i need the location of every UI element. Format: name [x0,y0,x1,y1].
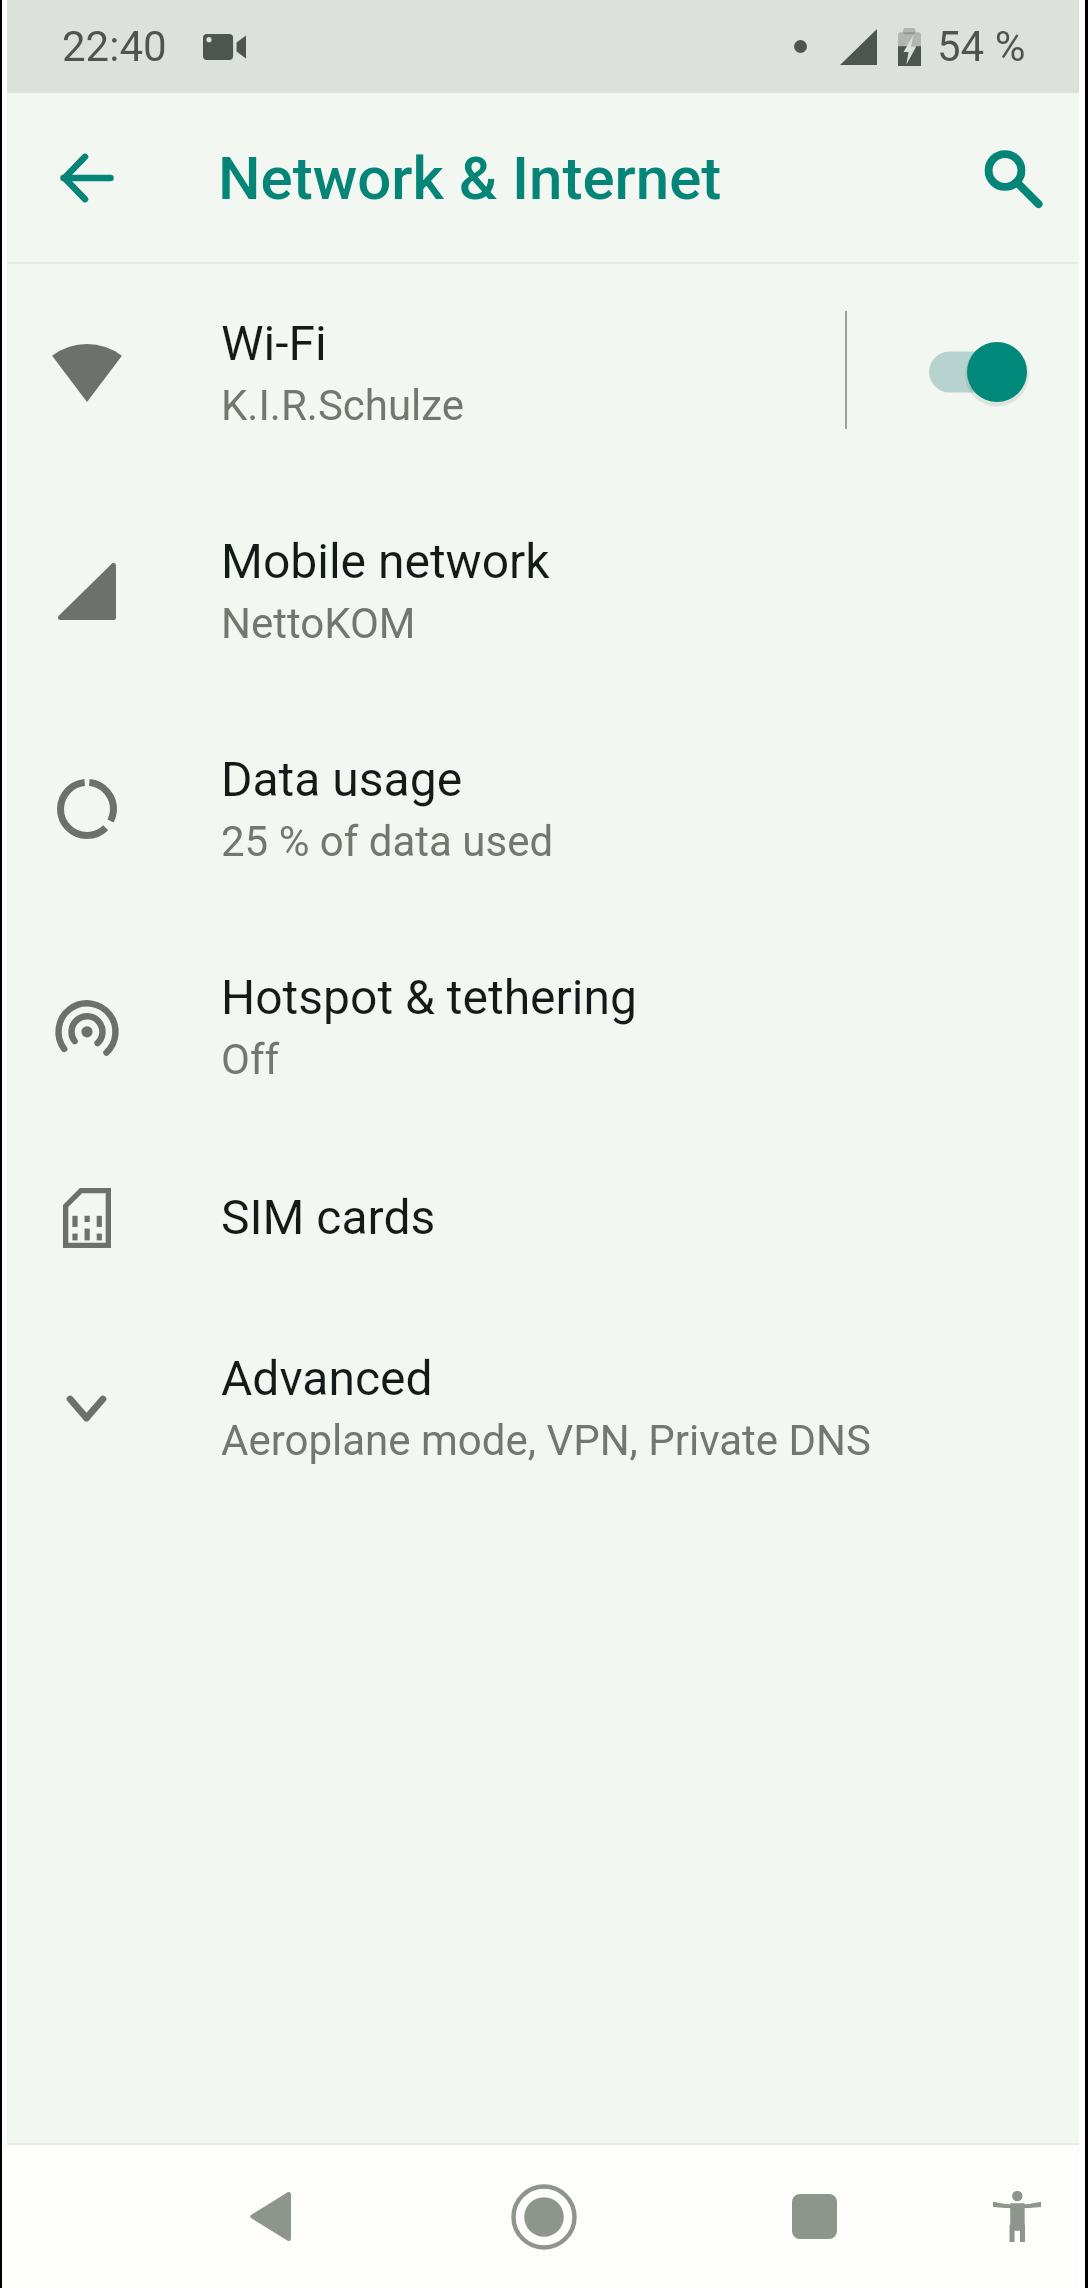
staticText: SIM cards [221,1189,436,1245]
button[interactable]: Mobile network [0,482,1088,700]
button[interactable]: Recent apps [754,2145,874,2288]
staticText: 22:40 [62,22,167,71]
staticText: K.I.R.Schulze [221,381,465,430]
staticText: Network & Internet [218,143,722,213]
staticText: Data usage [221,751,463,807]
button[interactable]: Navigate up [27,118,147,238]
button[interactable]: Back [210,2145,330,2288]
button[interactable]: Wi-Fi on [900,312,1060,432]
button[interactable]: Home [484,2145,604,2288]
staticText: Aeroplane mode, VPN, Private DNS [221,1416,871,1465]
staticText: 54 % [937,22,1026,71]
staticText: NettoKOM [221,599,416,648]
button[interactable]: Search [944,118,1064,238]
staticText: Hotspot & tethering [221,969,637,1025]
button[interactable]: SIM cards [0,1136,1088,1299]
staticText: Advanced [221,1350,433,1406]
staticText: 25 % of data used [221,817,554,866]
staticText: Off [221,1035,280,1084]
button[interactable]: Data usage [0,700,1088,918]
button[interactable]: Wi-Fi [0,264,1088,482]
staticText: Wi-Fi [221,315,327,371]
staticText: Mobile network [221,533,550,589]
button[interactable]: Hotspot & tethering [0,918,1088,1136]
button[interactable]: Accessibility [957,2145,1077,2288]
button[interactable]: Advanced [0,1299,1088,1517]
